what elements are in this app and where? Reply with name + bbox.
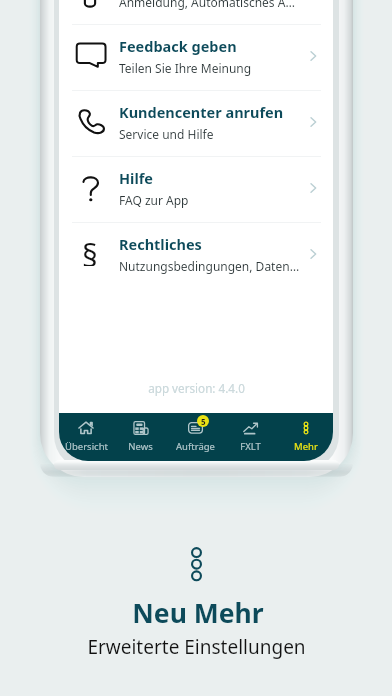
staticText: Rechtliches	[119, 234, 202, 254]
staticText: Aufträge	[176, 440, 215, 453]
staticText: Neu Mehr	[132, 595, 264, 631]
staticText: Anmeldung, Automatisches A…	[119, 0, 295, 10]
staticText: Feedback geben	[119, 36, 237, 56]
staticText: Nutzungsbedingungen, Daten…	[119, 258, 300, 274]
staticText: Hilfe	[119, 168, 154, 188]
staticText: §	[82, 234, 98, 266]
button[interactable]: Mehr	[278, 413, 333, 461]
button[interactable]: Hilfe	[59, 157, 333, 222]
button[interactable]: Anmelden	[59, 0, 333, 24]
staticText: 5	[201, 416, 206, 427]
staticText: Erweiterte Einstellungen	[87, 634, 306, 660]
button[interactable]: Feedback geben	[59, 25, 333, 90]
button[interactable]: Kundencenter anrufen	[59, 91, 333, 156]
staticText: Service und Hilfe	[119, 126, 214, 142]
staticText: FXLT	[240, 440, 261, 453]
staticText: FAQ zur App	[119, 192, 189, 208]
staticText: Übersicht	[65, 440, 108, 453]
staticText: app version: 4.4.0	[148, 380, 245, 396]
staticText: Mehr	[294, 440, 318, 453]
staticText: Kundencenter anrufen	[119, 102, 284, 122]
staticText: Teilen Sie Ihre Meinung	[119, 60, 252, 76]
button[interactable]: Aufträge	[168, 413, 223, 461]
button[interactable]: FXLT	[223, 413, 278, 461]
staticText: News	[128, 440, 153, 453]
button[interactable]: Übersicht	[59, 413, 113, 461]
button[interactable]: §	[59, 223, 333, 288]
button[interactable]: News	[113, 413, 168, 461]
